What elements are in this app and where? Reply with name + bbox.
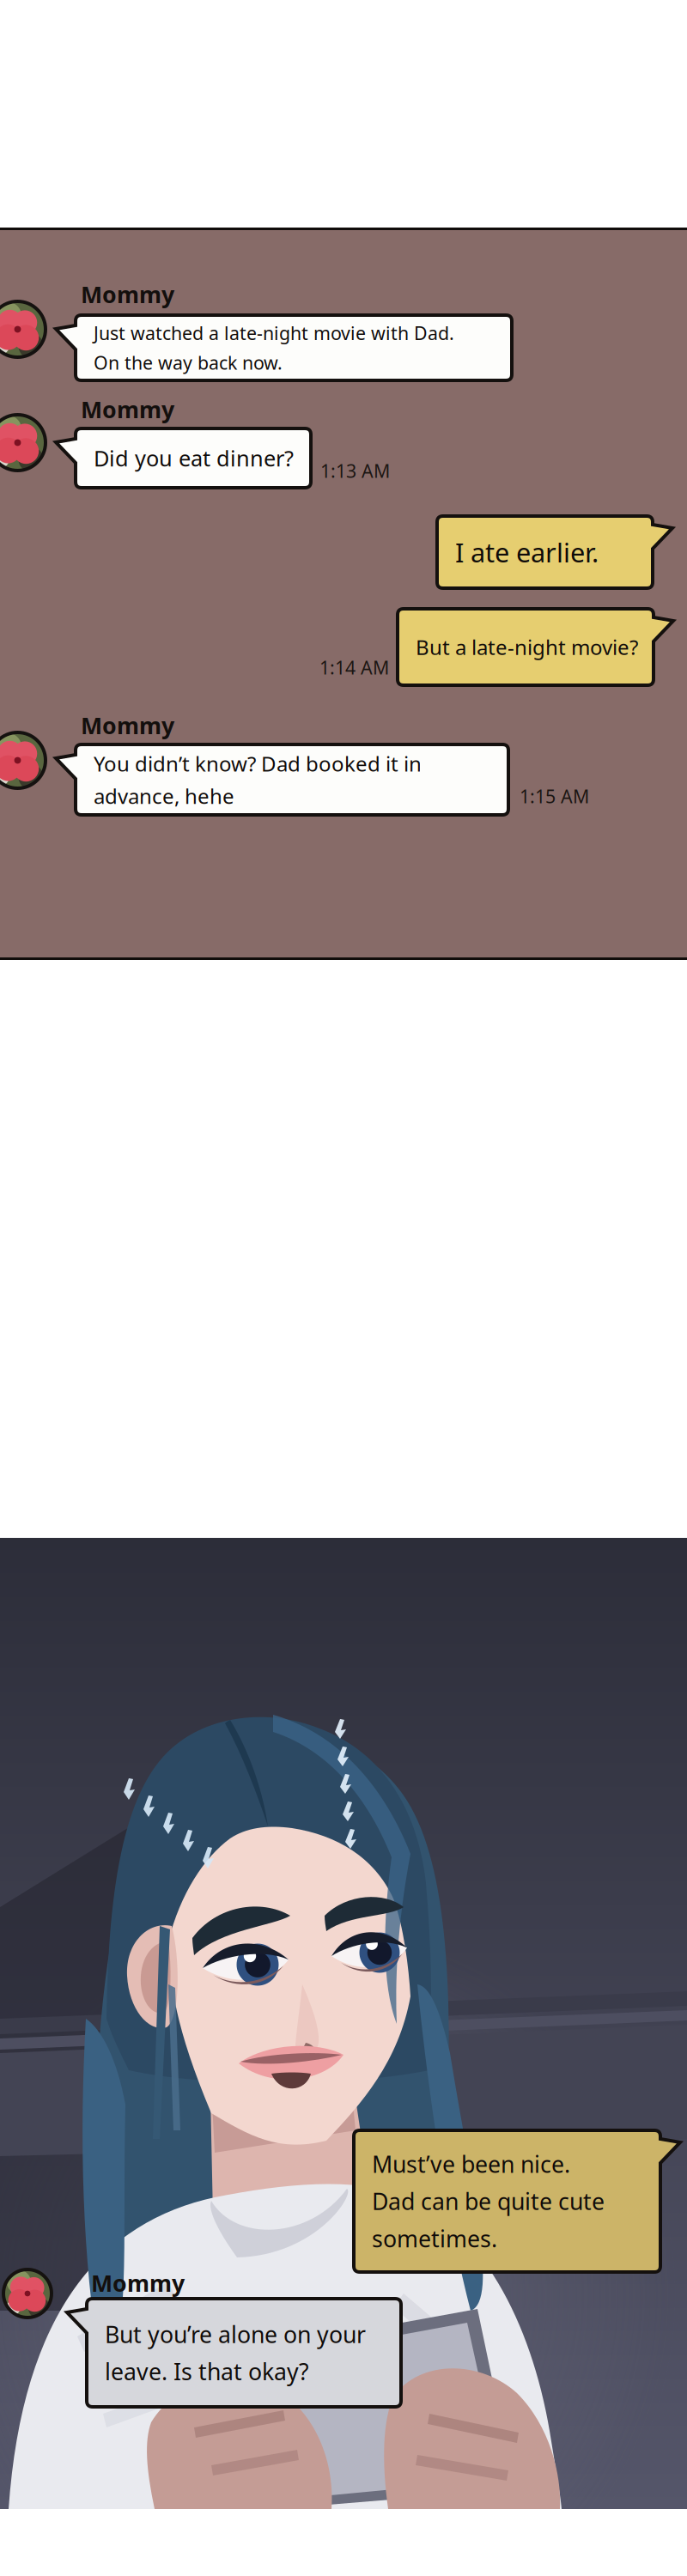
staticText: Mommy (91, 2268, 185, 2298)
staticText: But you’re alone on your (105, 2319, 366, 2349)
staticText: I ate earlier. (455, 535, 599, 570)
staticText: Dad can be quite cute (372, 2186, 605, 2216)
staticText: On the way back now. (94, 350, 283, 375)
staticText: advance, hehe (94, 782, 234, 810)
staticText: You didn’t know? Dad booked it in (94, 750, 422, 777)
staticText: 1:13 AM (320, 459, 390, 483)
staticText: sometimes. (372, 2223, 497, 2254)
staticText: leave. Is that okay? (105, 2356, 309, 2387)
staticText: 1:14 AM (319, 655, 389, 679)
staticText: Mommy (81, 710, 174, 741)
staticText: Just watched a late-night movie with Dad… (94, 321, 454, 345)
staticText: Mommy (81, 279, 174, 309)
staticText: But a late-night movie? (416, 633, 638, 661)
staticText: Mommy (81, 394, 174, 425)
staticText: 1:15 AM (520, 784, 589, 808)
staticText: Must’ve been nice. (372, 2149, 570, 2179)
staticText: Did you eat dinner? (94, 444, 294, 473)
